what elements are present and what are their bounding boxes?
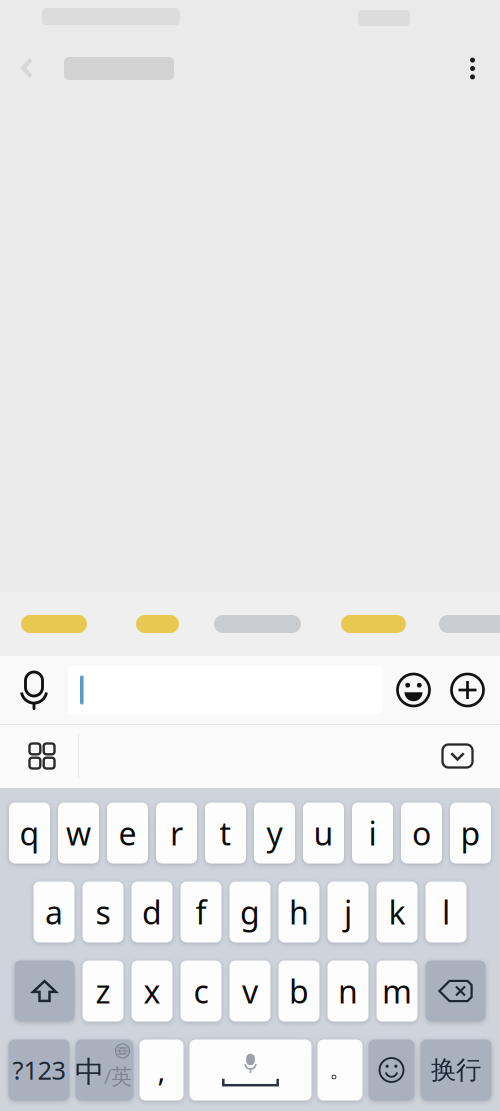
button[interactable]: Quick reply [301, 592, 406, 656]
button[interactable]: o [401, 802, 442, 863]
button[interactable]: c [180, 960, 221, 1021]
button[interactable]: g [229, 881, 270, 942]
staticText: d [142, 890, 162, 934]
staticText: i [368, 811, 376, 855]
button[interactable]: Delete [425, 960, 485, 1021]
button[interactable]: f [180, 881, 221, 942]
button[interactable]: i [352, 802, 393, 863]
button[interactable]: t [205, 802, 246, 863]
button[interactable]: Emoji [368, 1039, 414, 1100]
staticText: a [45, 890, 63, 934]
button[interactable]: a [33, 881, 74, 942]
button[interactable]: k [376, 881, 417, 942]
button[interactable]: v [229, 960, 270, 1021]
button[interactable]: l [425, 881, 466, 942]
button[interactable]: p [450, 802, 491, 863]
button[interactable]: More options [449, 43, 495, 93]
staticText: 换行 [431, 1054, 481, 1086]
button[interactable]: x [131, 960, 172, 1021]
button[interactable]: Quick reply [406, 592, 500, 656]
staticText: g [240, 890, 260, 934]
button[interactable]: Quick reply [179, 592, 301, 656]
staticText: u [313, 811, 333, 855]
button[interactable]: Chinese English toggle [75, 1039, 133, 1100]
button[interactable]: z [82, 960, 123, 1021]
button[interactable]: Shift [14, 960, 74, 1021]
staticText: w [66, 811, 91, 855]
button[interactable]: e [107, 802, 148, 863]
button[interactable]: q [9, 802, 50, 863]
button[interactable]: h [278, 881, 319, 942]
button[interactable]: Emoji [383, 656, 435, 724]
staticText: , [157, 1050, 165, 1090]
staticText: o [412, 811, 431, 855]
button[interactable]: More [435, 656, 500, 724]
staticText: j [344, 890, 352, 934]
staticText: e [118, 811, 136, 855]
button[interactable]: Quick reply [87, 592, 179, 656]
staticText: x [143, 969, 160, 1013]
button[interactable]: Space [189, 1039, 311, 1100]
staticText: m [382, 969, 412, 1013]
button[interactable]: j [327, 881, 368, 942]
staticText: ?123 [12, 1053, 65, 1087]
button[interactable]: Back [4, 43, 50, 93]
button[interactable]: Input options [0, 724, 78, 787]
button[interactable]: r [156, 802, 197, 863]
staticText: h [289, 890, 309, 934]
staticText: q [19, 811, 39, 855]
button[interactable]: , [139, 1039, 183, 1100]
button[interactable]: 。 [317, 1039, 362, 1100]
button[interactable]: m [376, 960, 417, 1021]
button[interactable]: w [58, 802, 99, 863]
button[interactable]: Quick reply [0, 592, 87, 656]
staticText: c [193, 969, 208, 1013]
staticText: l [442, 890, 450, 934]
staticText: / [104, 1062, 111, 1090]
staticText: k [388, 890, 405, 934]
staticText: b [289, 969, 309, 1013]
staticText: n [338, 969, 358, 1013]
button[interactable]: d [131, 881, 172, 942]
button[interactable]: Hide keyboard [415, 724, 500, 787]
button[interactable]: s [82, 881, 123, 942]
staticText: 中 [75, 1053, 104, 1090]
button[interactable]: b [278, 960, 319, 1021]
button[interactable]: 换行 [420, 1039, 491, 1100]
staticText: t [219, 811, 231, 855]
button[interactable]: ?123 [8, 1039, 69, 1100]
button[interactable]: n [327, 960, 368, 1021]
staticText: s [95, 890, 110, 934]
staticText: r [170, 811, 183, 855]
staticText: v [242, 969, 258, 1013]
button[interactable]: u [303, 802, 344, 863]
staticText: 英 [111, 1064, 132, 1090]
staticText: f [195, 890, 206, 934]
staticText: y [266, 811, 282, 855]
button[interactable]: Voice input [0, 656, 68, 724]
staticText: p [460, 811, 480, 855]
button[interactable]: Chat title [49, 43, 189, 93]
staticText: 。 [329, 1057, 350, 1083]
button[interactable]: y [254, 802, 295, 863]
staticText: z [95, 969, 110, 1013]
